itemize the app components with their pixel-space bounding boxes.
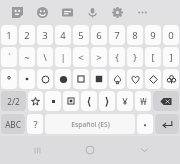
button[interactable]: Recents <box>20 139 54 161</box>
staticText: [ <box>151 51 155 64</box>
button[interactable]: Symbol 8 <box>127 69 143 89</box>
button[interactable]: 4 <box>55 25 71 45</box>
button[interactable]: Symbol 4 <box>55 69 71 89</box>
button[interactable]: ABC <box>1 114 25 134</box>
staticText: ⟩ <box>104 95 110 108</box>
button[interactable]: ~ <box>19 47 35 67</box>
staticText: 2/2 <box>7 96 20 107</box>
staticText: Español (ES) <box>71 120 110 129</box>
staticText: < <box>78 51 84 64</box>
button[interactable]: < <box>73 47 89 67</box>
button[interactable]: Symbol 1 <box>1 69 17 89</box>
staticText: { <box>115 51 119 64</box>
button[interactable]: ? <box>27 114 43 134</box>
button[interactable]: Stickers <box>5 0 29 24</box>
button[interactable]: | <box>55 47 71 67</box>
staticText: } <box>133 51 137 64</box>
button[interactable]: ` <box>1 47 17 67</box>
staticText: | <box>60 51 66 64</box>
staticText: ABC <box>5 119 21 130</box>
button[interactable]: 8 <box>127 25 143 45</box>
button[interactable]: Symbol 9 <box>145 69 161 89</box>
button[interactable]: \ <box>37 47 53 67</box>
staticText: 8 <box>132 29 138 42</box>
button[interactable]: Español (ES) <box>45 114 135 134</box>
button[interactable]: More options <box>130 0 154 24</box>
button[interactable]: ] <box>163 47 179 67</box>
button[interactable]: Clipboard <box>55 0 79 24</box>
button[interactable]: Star <box>28 91 43 111</box>
button[interactable]: Emoji <box>30 0 54 24</box>
button[interactable]: Enter <box>155 114 179 134</box>
button[interactable]: Symbol 3 <box>37 69 53 89</box>
button[interactable]: Home <box>73 139 107 161</box>
staticText: ~ <box>24 51 30 64</box>
button[interactable]: 6 <box>91 25 107 45</box>
button[interactable]: 0 <box>163 25 179 45</box>
button[interactable]: Symbol 7 <box>109 69 125 89</box>
staticText: ₩ <box>140 95 147 108</box>
staticText: ¥ <box>122 95 128 108</box>
button[interactable]: Symbol 5 <box>73 69 89 89</box>
staticText: 3 <box>42 29 48 42</box>
button[interactable]: Settings <box>105 0 129 24</box>
button[interactable]: Hide keyboard <box>127 139 161 161</box>
button[interactable]: 2/2 <box>1 91 26 111</box>
staticText: 1 <box>6 29 12 42</box>
staticText: 7 <box>114 29 120 42</box>
button[interactable]: 2 <box>19 25 35 45</box>
button[interactable]: Backspace <box>153 91 179 111</box>
button[interactable]: Boxed square <box>63 91 79 111</box>
button[interactable]: ¥ <box>117 91 133 111</box>
button[interactable]: } <box>127 47 143 67</box>
button[interactable]: Period <box>137 114 153 134</box>
button[interactable]: 3 <box>37 25 53 45</box>
staticText: 2 <box>24 29 30 42</box>
staticText: > <box>96 51 102 64</box>
button[interactable]: Symbol 10 <box>163 69 179 89</box>
button[interactable]: > <box>91 47 107 67</box>
button[interactable]: Voice input <box>80 0 104 24</box>
staticText: 4 <box>60 29 66 42</box>
button[interactable]: ⟨ <box>81 91 97 111</box>
button[interactable]: Small square <box>45 91 61 111</box>
staticText: ] <box>169 51 173 64</box>
staticText: 5 <box>78 29 84 42</box>
button[interactable]: 9 <box>145 25 161 45</box>
staticText: \ <box>43 51 47 64</box>
staticText: ` <box>8 51 11 64</box>
button[interactable]: [ <box>145 47 161 67</box>
button[interactable]: 5 <box>73 25 89 45</box>
staticText: 6 <box>96 29 102 42</box>
button[interactable]: ₩ <box>135 91 151 111</box>
button[interactable]: { <box>109 47 125 67</box>
button[interactable]: 7 <box>109 25 125 45</box>
button[interactable]: ⟩ <box>99 91 115 111</box>
button[interactable]: Symbol 2 <box>19 69 35 89</box>
staticText: ⟨ <box>86 95 92 108</box>
staticText: ? <box>33 118 38 131</box>
staticText: 9 <box>150 29 156 42</box>
staticText: 0 <box>168 29 174 42</box>
button[interactable]: Symbol 6 <box>91 69 107 89</box>
button[interactable]: 1 <box>1 25 17 45</box>
